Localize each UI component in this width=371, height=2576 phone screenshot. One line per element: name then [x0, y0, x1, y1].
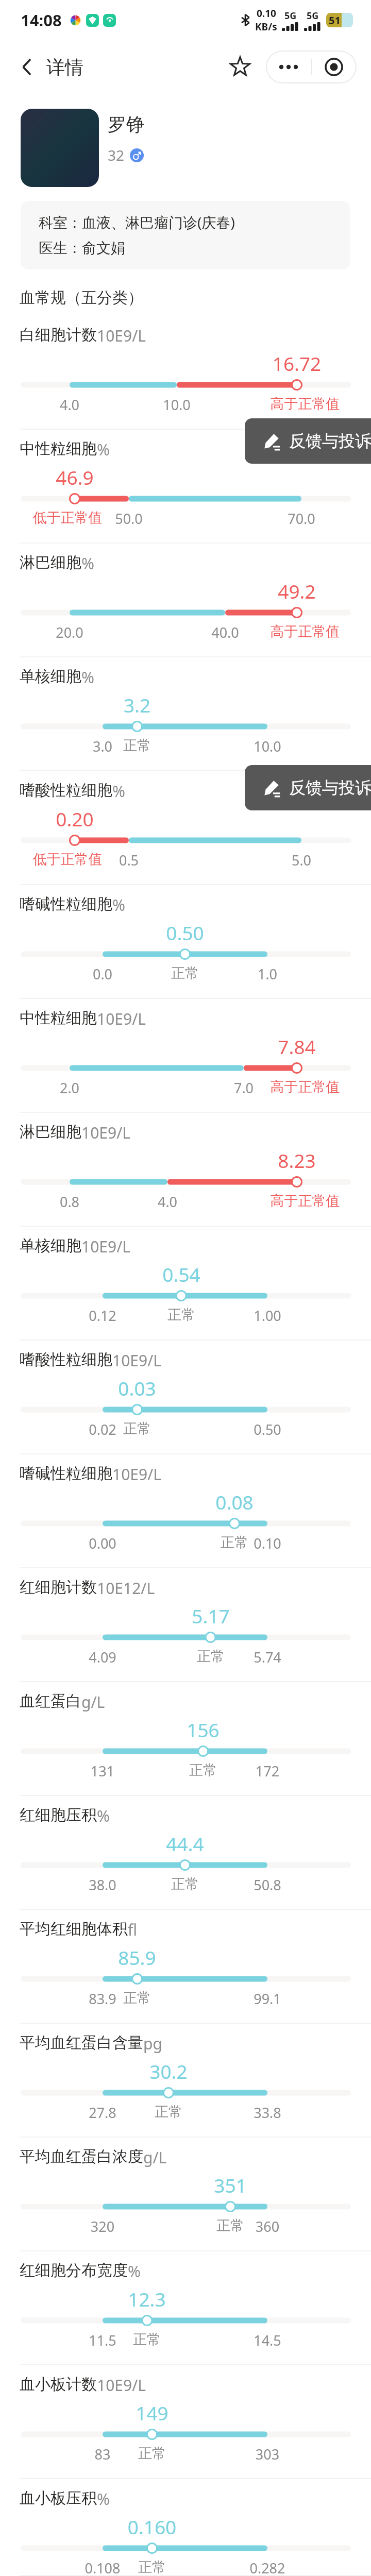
staticText: 中性粒细胞 — [20, 1008, 97, 1028]
staticText: 0.8 — [0, 1192, 183, 1211]
staticText: KB/s — [255, 20, 277, 33]
staticText: fl — [128, 1919, 138, 1940]
staticText: 30.2 — [55, 2058, 282, 2084]
staticText: 10E9/L — [81, 1236, 131, 1257]
staticText: 高于正常值 — [192, 395, 371, 413]
staticText: 详情 — [46, 56, 83, 79]
staticText: % — [97, 2488, 110, 2510]
staticText: 32 — [108, 145, 125, 165]
staticText: 12.3 — [33, 2286, 260, 2312]
staticText: 0.08 — [121, 1489, 348, 1515]
staticText: 11.5 — [0, 2331, 216, 2350]
staticText: % — [128, 2261, 141, 2282]
staticText: 正常 — [72, 964, 298, 982]
staticText: 正常 — [117, 2217, 344, 2234]
staticText: 正常 — [24, 1420, 250, 1437]
staticText: 正常 — [24, 1989, 250, 2007]
staticText: % — [81, 667, 94, 688]
staticText: 低于正常值 — [0, 851, 181, 868]
staticText: 血小板计数 — [20, 2375, 97, 2394]
staticText: 10E9/L — [81, 1122, 131, 1143]
staticText: 高于正常值 — [192, 623, 371, 640]
staticText: 351 — [117, 2172, 344, 2198]
staticText: 正常 — [121, 1534, 348, 1551]
staticText: 4.0 — [0, 395, 183, 414]
staticText: 27.8 — [0, 2103, 216, 2122]
staticText: 303 — [154, 2445, 371, 2464]
button[interactable]: 反馈与投诉 — [245, 765, 371, 810]
staticText: 0.10 — [154, 1534, 371, 1553]
staticText: 平均红细胞体积 — [20, 1919, 128, 1939]
staticText: 10E9/L — [112, 1464, 162, 1485]
staticText: 正常 — [55, 2103, 282, 2121]
staticText: 低于正常值 — [0, 509, 181, 527]
staticText: 淋巴细胞 — [20, 553, 81, 572]
staticText: 156 — [90, 1717, 316, 1742]
staticText: 38.0 — [0, 1875, 216, 1894]
staticText: 0.03 — [24, 1375, 250, 1401]
staticText: 科室：血液、淋巴瘤门诊(庆春) — [39, 212, 235, 232]
staticText: 8.23 — [183, 1147, 371, 1173]
staticText: % — [112, 894, 125, 916]
staticText: 白细胞计数 — [20, 325, 97, 345]
staticText: 360 — [154, 2217, 371, 2236]
staticText: 10E9/L — [97, 1008, 146, 1029]
staticText: 14.5 — [154, 2331, 371, 2350]
staticText: 2.0 — [0, 1078, 183, 1097]
button[interactable]: More options — [266, 50, 311, 83]
staticText: 嗜酸性粒细胞 — [20, 1350, 112, 1369]
staticText: 高于正常值 — [192, 1192, 371, 1210]
staticText: 0.50 — [154, 1420, 371, 1439]
staticText: g/L — [81, 1691, 105, 1713]
staticText: 反馈与投诉 — [289, 777, 371, 798]
staticText: 血红蛋白 — [20, 1691, 81, 1711]
staticText: 5.74 — [154, 1648, 371, 1667]
button[interactable]: Record — [311, 50, 357, 83]
staticText: 血小板压积 — [20, 2488, 97, 2508]
staticText: 50.0 — [15, 509, 242, 528]
staticText: 红细胞计数 — [20, 1578, 97, 1597]
staticText: 33.8 — [154, 2103, 371, 2122]
staticText: 172 — [154, 1761, 371, 1781]
staticText: 10E9/L — [97, 325, 146, 346]
staticText: 16.72 — [183, 350, 371, 376]
staticText: 中性粒细胞 — [20, 439, 97, 459]
button[interactable]: 反馈与投诉 — [245, 418, 371, 464]
staticText: 50.8 — [154, 1875, 371, 1894]
staticText: 医生：俞文娟 — [39, 239, 125, 257]
staticText: 4.0 — [54, 1192, 281, 1211]
staticText: 5G — [307, 9, 319, 22]
staticText: 3.0 — [0, 737, 216, 756]
staticText: 0.54 — [68, 1261, 295, 1287]
staticText: 正常 — [97, 1648, 324, 1665]
staticText: 7.84 — [183, 1033, 371, 1059]
staticText: 7.0 — [130, 1078, 357, 1097]
staticText: 1.00 — [154, 1306, 371, 1325]
button[interactable]: Favorite — [224, 50, 257, 83]
staticText: 平均血红蛋白浓度 — [20, 2147, 143, 2166]
staticText: 0.02 — [0, 1420, 216, 1439]
staticText: 0.160 — [39, 2514, 265, 2539]
staticText: 10.0 — [154, 737, 371, 756]
button[interactable]: Back — [11, 52, 42, 82]
staticText: 99.1 — [154, 1989, 371, 2008]
staticText: 罗铮 — [108, 113, 145, 136]
staticText: 0.108 — [0, 2558, 216, 2576]
staticText: 0.10 — [257, 7, 276, 20]
staticText: 320 — [0, 2217, 216, 2236]
staticText: 淋巴细胞 — [20, 1122, 81, 1142]
staticText: 83 — [0, 2445, 216, 2464]
staticText: % — [97, 1805, 110, 1826]
staticText: % — [112, 781, 125, 802]
staticText: 正常 — [72, 1875, 298, 1893]
staticText: pg — [143, 2033, 162, 2054]
staticText: 5.0 — [188, 851, 371, 870]
staticText: 0.20 — [0, 806, 188, 832]
staticText: 高于正常值 — [192, 1078, 371, 1096]
staticText: 正常 — [90, 1761, 316, 1779]
staticText: 嗜碱性粒细胞 — [20, 1464, 112, 1483]
staticText: 20.0 — [0, 623, 183, 642]
staticText: 血常规（五分类） — [20, 288, 143, 308]
staticText: 14:08 — [21, 9, 62, 31]
staticText: 正常 — [33, 2331, 260, 2348]
